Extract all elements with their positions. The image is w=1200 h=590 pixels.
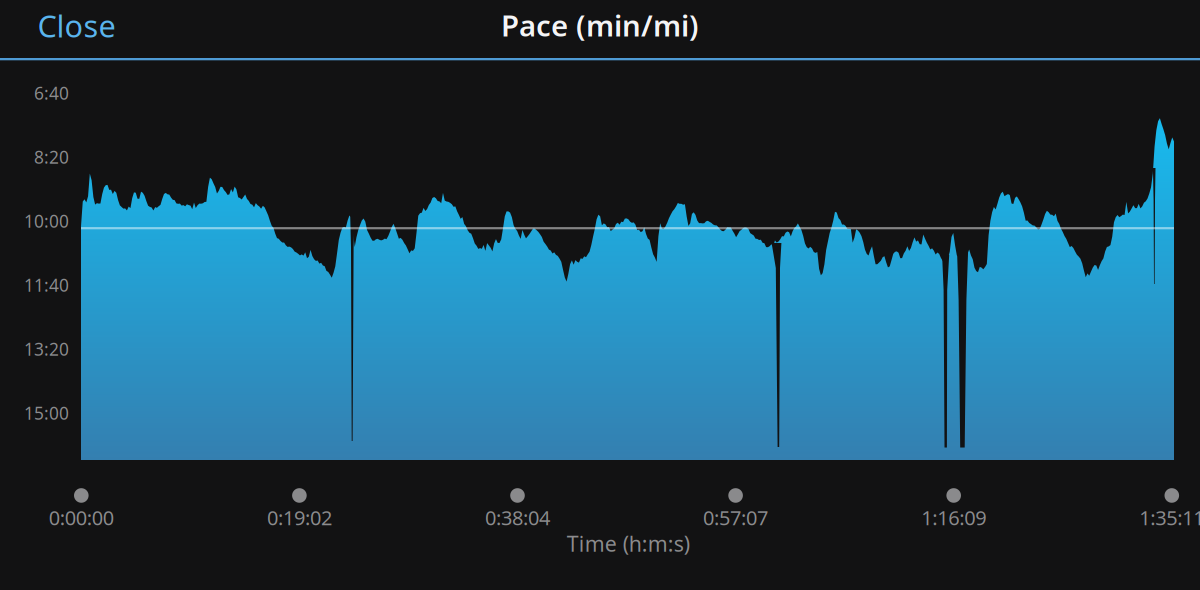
staticText: 1:35:11: [1139, 504, 1200, 531]
staticText: 15:00: [24, 401, 69, 424]
button[interactable]: Close: [0, 1, 133, 57]
staticText: Time (h:m:s): [567, 529, 690, 557]
staticText: 13:20: [24, 337, 69, 360]
staticText: 0:00:00: [49, 504, 114, 531]
staticText: 0:19:02: [267, 504, 332, 531]
staticText: 6:40: [34, 81, 69, 104]
staticText: 11:40: [24, 273, 69, 296]
staticText: Pace (min/mi): [501, 5, 699, 44]
staticText: 0:38:04: [485, 504, 550, 531]
staticText: Close: [37, 5, 115, 46]
staticText: 8:20: [34, 145, 69, 168]
staticText: 1:16:09: [921, 504, 986, 531]
staticText: 10:00: [24, 209, 69, 232]
staticText: 0:57:07: [703, 504, 768, 531]
